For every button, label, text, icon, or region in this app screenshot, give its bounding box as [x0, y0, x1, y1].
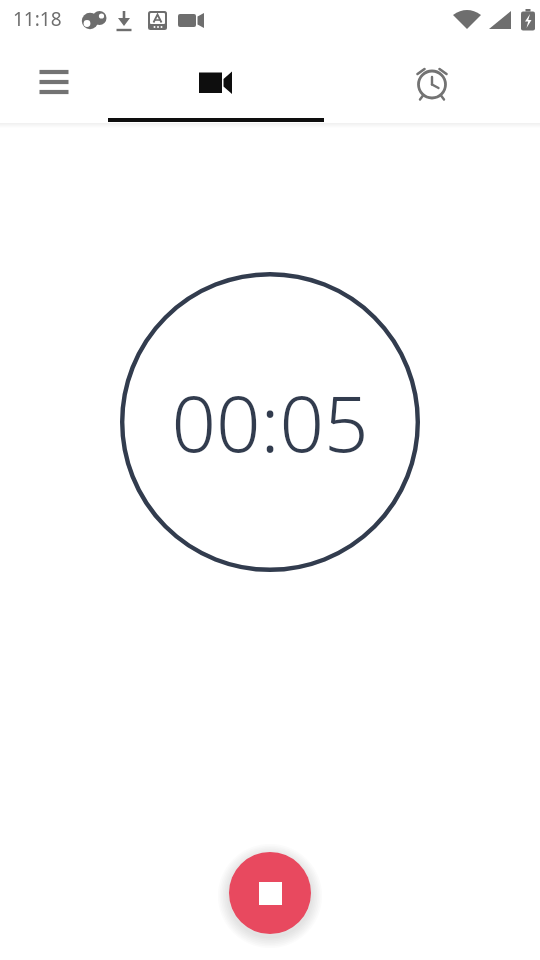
button[interactable]: Stop recording [229, 852, 311, 934]
button[interactable]: Recorder tab [108, 40, 324, 123]
button[interactable]: Alarms tab [324, 40, 540, 123]
staticText: 11:18 [13, 6, 62, 32]
staticText: 00:05 [171, 369, 369, 475]
button[interactable]: Open navigation menu [0, 40, 108, 123]
button[interactable]: 00:05 [120, 272, 420, 572]
